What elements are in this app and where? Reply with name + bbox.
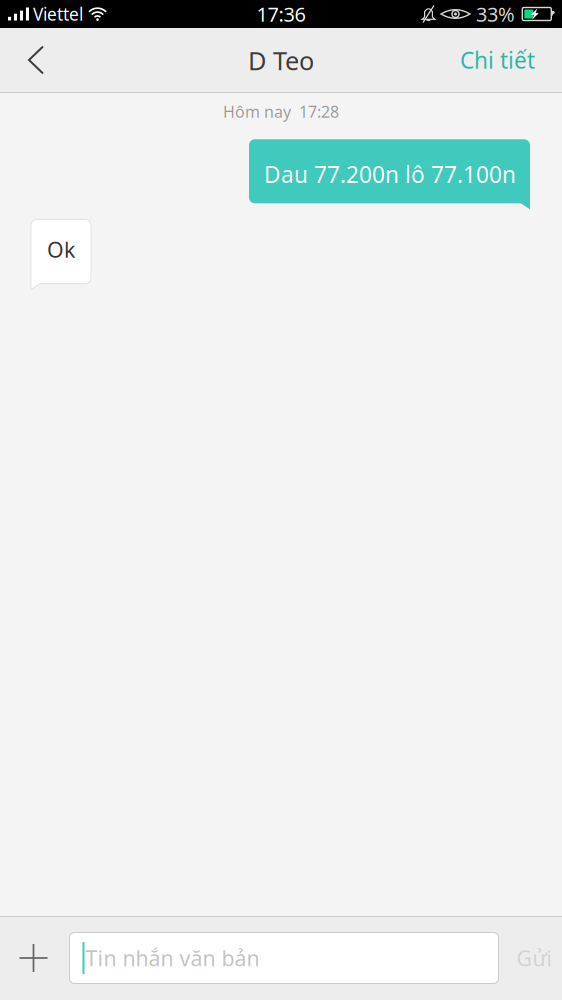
staticText: D Teo xyxy=(248,44,314,77)
button[interactable]: Tin nhắn văn bản xyxy=(69,932,498,983)
staticText: Tin nhắn văn bản xyxy=(85,944,259,972)
staticText: Chi tiết xyxy=(460,45,535,75)
staticText: Hôm nay 17:28 xyxy=(223,101,339,122)
staticText: Ok xyxy=(47,235,75,264)
button[interactable]: Gửi xyxy=(506,924,562,992)
staticText: Dau 77.200n lô 77.100n xyxy=(264,159,516,189)
staticText: Gửi xyxy=(516,944,552,972)
button[interactable]: Chi tiết xyxy=(438,25,562,96)
staticText: 33% xyxy=(476,1,515,27)
staticText: Viettel xyxy=(33,2,83,25)
button[interactable]: Back xyxy=(0,28,64,92)
button[interactable]: Add attachment xyxy=(0,930,69,986)
staticText: 17:36 xyxy=(256,1,305,27)
